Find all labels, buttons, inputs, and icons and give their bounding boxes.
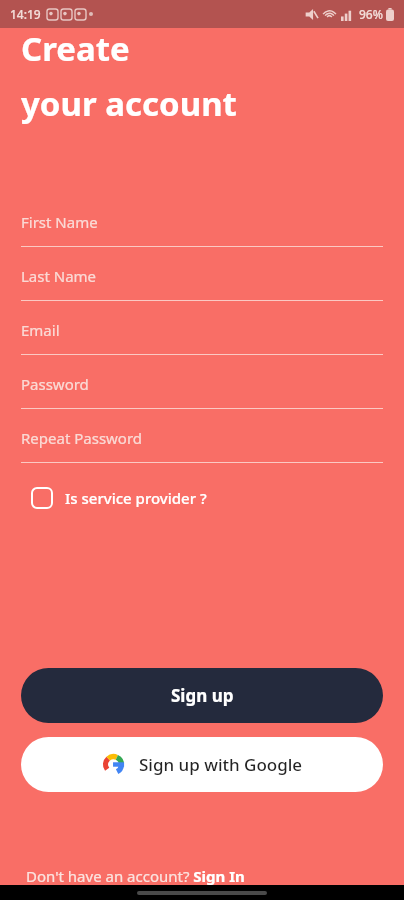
staticText: 96%: [359, 6, 383, 22]
button[interactable]: Repeat Password: [21, 420, 383, 463]
button[interactable]: Is service provider ?: [21, 483, 215, 513]
staticText: Sign up: [171, 684, 234, 707]
staticText: First Name: [21, 212, 98, 232]
button[interactable]: Sign up: [21, 668, 383, 723]
staticText: Sign up with Google: [139, 753, 303, 776]
staticText: Is service provider ?: [65, 488, 207, 508]
button[interactable]: Last Name: [21, 258, 383, 301]
staticText: Email: [21, 320, 60, 340]
staticText: Last Name: [21, 266, 97, 286]
staticText: 14:19: [10, 6, 41, 22]
button[interactable]: First Name: [21, 204, 383, 247]
staticText: your account: [21, 81, 237, 126]
button[interactable]: Sign up with Google: [21, 737, 383, 792]
staticText: Repeat Password: [21, 428, 143, 448]
staticText: Create: [21, 26, 130, 71]
button[interactable]: Email: [21, 312, 383, 355]
staticText: Password: [21, 374, 89, 394]
staticText: Don't have an account? Sign In: [26, 866, 245, 886]
button[interactable]: Password: [21, 366, 383, 409]
button[interactable]: Don't have an account? Sign In: [21, 864, 251, 888]
